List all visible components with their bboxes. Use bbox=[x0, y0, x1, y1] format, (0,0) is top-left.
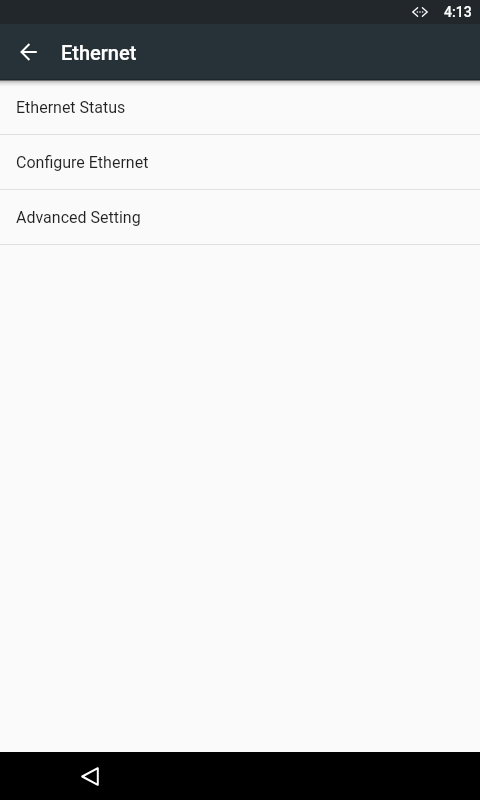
staticText: 4:13 bbox=[444, 4, 472, 20]
button[interactable]: Navigate up bbox=[5, 28, 53, 76]
button[interactable]: Configure Ethernet bbox=[0, 135, 480, 190]
staticText: Ethernet bbox=[61, 41, 137, 64]
staticText: Ethernet Status bbox=[16, 98, 126, 117]
staticText: Configure Ethernet bbox=[16, 153, 149, 172]
button[interactable]: Ethernet Status bbox=[0, 80, 480, 135]
button[interactable]: Back bbox=[73, 759, 107, 793]
staticText: Advanced Setting bbox=[16, 208, 141, 227]
button[interactable]: Advanced Setting bbox=[0, 190, 480, 245]
